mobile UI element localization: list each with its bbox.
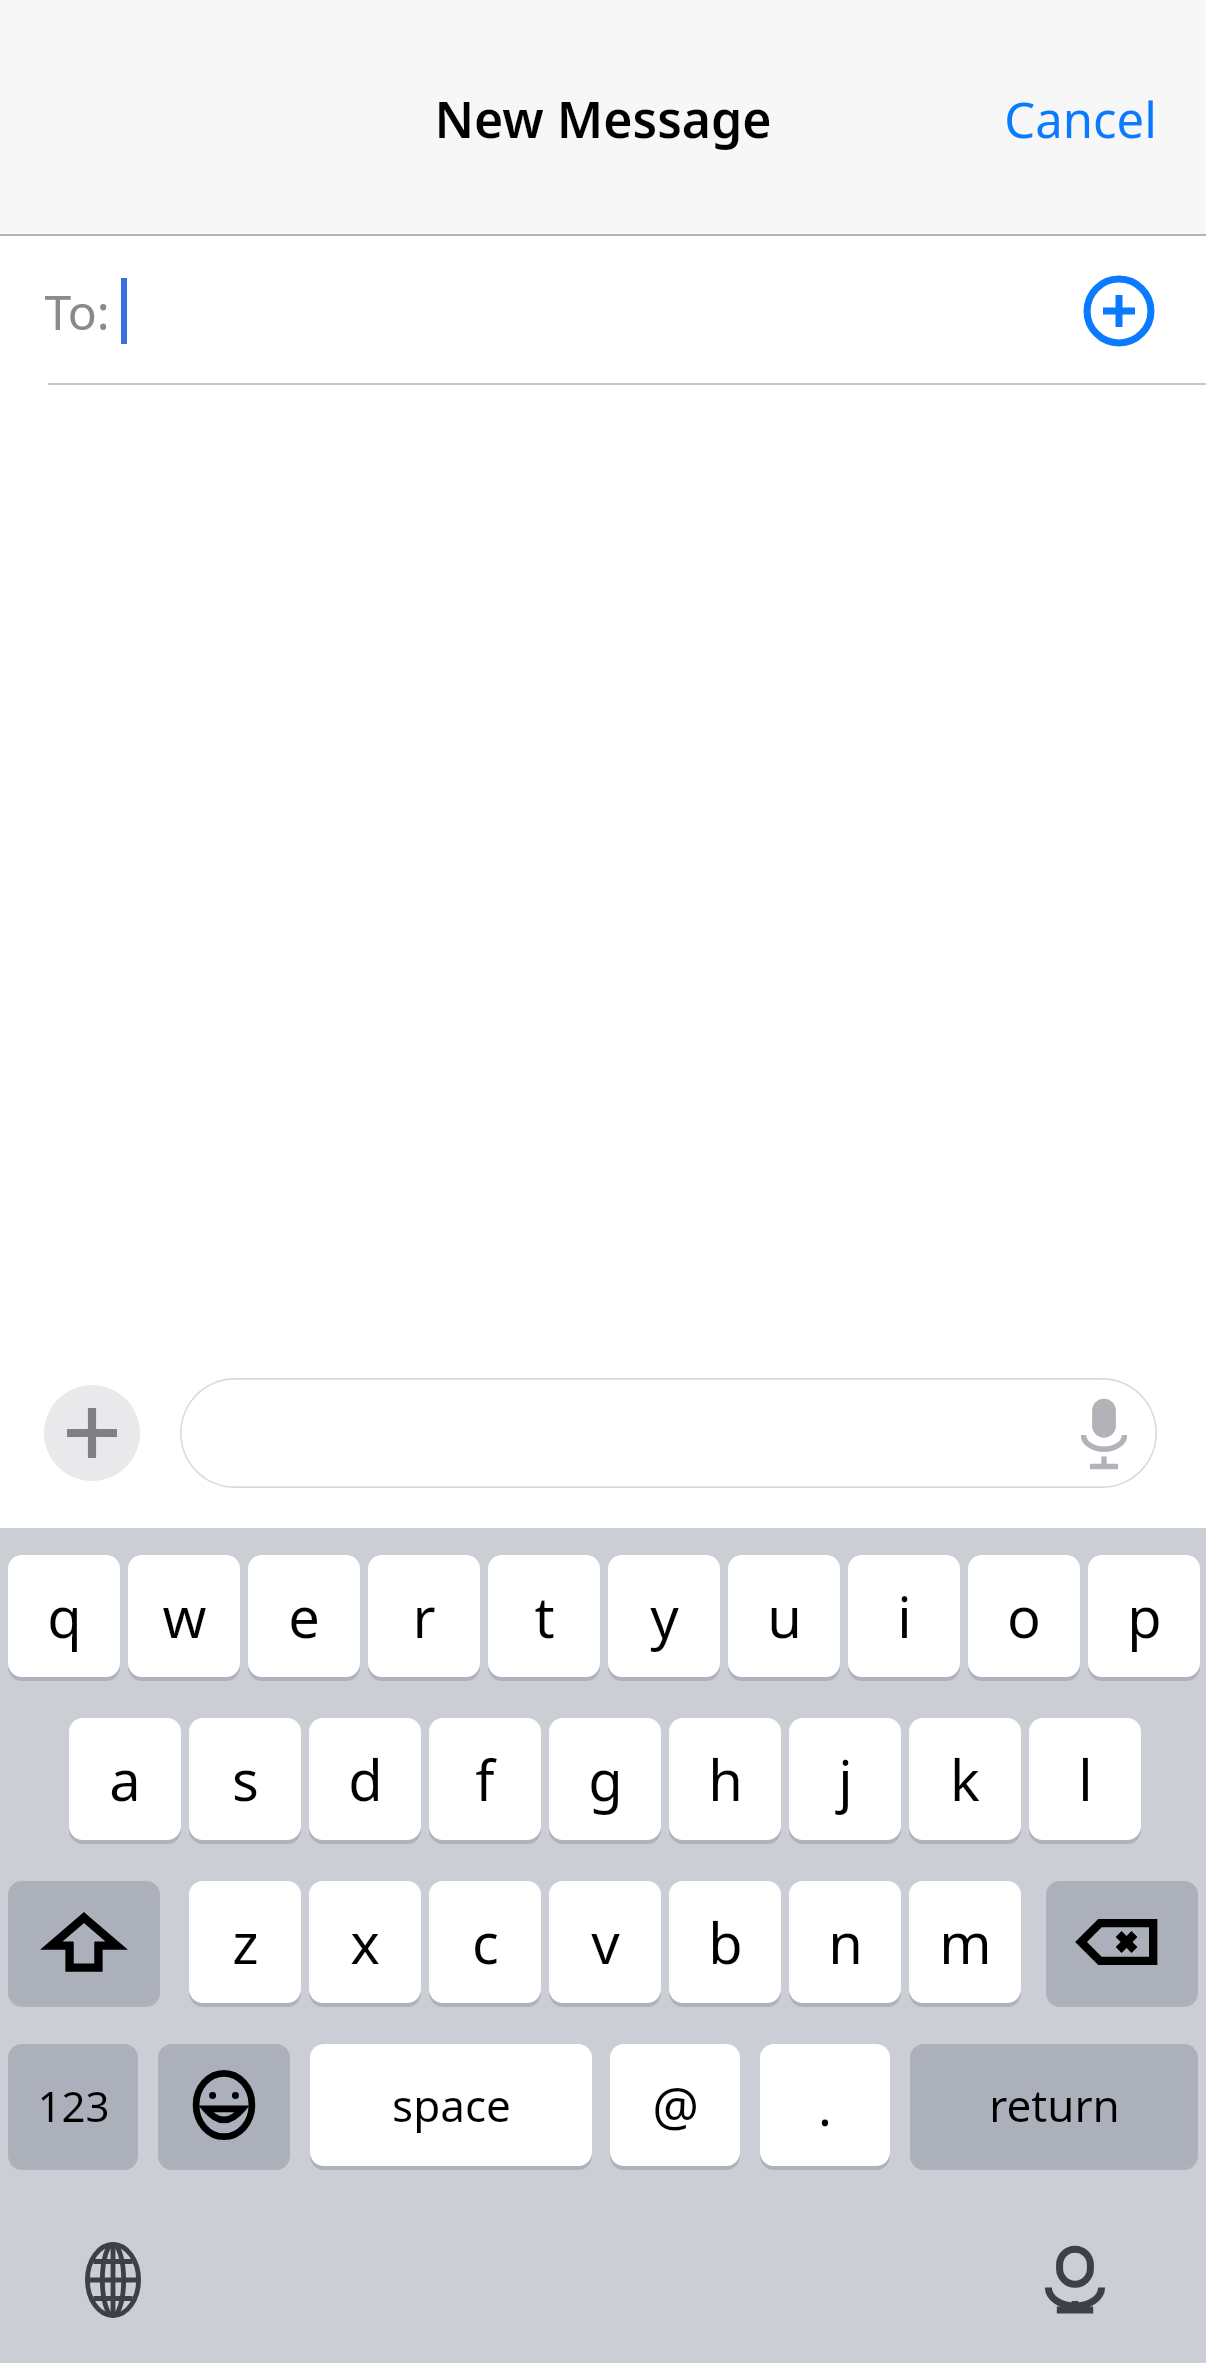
staticText: u	[767, 1578, 802, 1654]
button[interactable]: o	[968, 1555, 1080, 1677]
staticText: q	[47, 1578, 82, 1654]
staticText: x	[350, 1904, 380, 1980]
staticText: space	[392, 2075, 511, 2135]
button[interactable]: Delete	[1046, 1881, 1198, 2003]
button[interactable]: space	[310, 2044, 592, 2166]
button[interactable]: v	[549, 1881, 661, 2003]
staticText: a	[109, 1741, 141, 1817]
button[interactable]: y	[608, 1555, 720, 1677]
button[interactable]: k	[909, 1718, 1021, 1840]
staticText: c	[472, 1904, 499, 1980]
button[interactable]: f	[429, 1718, 541, 1840]
button[interactable]: c	[429, 1881, 541, 2003]
button[interactable]: d	[309, 1718, 421, 1840]
button[interactable]: @	[610, 2044, 740, 2166]
button[interactable]: i	[848, 1555, 960, 1677]
staticText: return	[989, 2075, 1120, 2135]
button[interactable]: Dictation	[1020, 2225, 1130, 2335]
button[interactable]: q	[8, 1555, 120, 1677]
button[interactable]: g	[549, 1718, 661, 1840]
button[interactable]: Cancel	[975, 72, 1185, 166]
button[interactable]: p	[1088, 1555, 1200, 1677]
button[interactable]	[180, 1378, 1157, 1488]
staticText: .	[818, 2070, 832, 2141]
staticText: 123	[37, 2077, 110, 2134]
staticText: To:	[44, 279, 110, 344]
staticText: s	[232, 1741, 259, 1817]
button[interactable]: z	[189, 1881, 301, 2003]
button[interactable]: m	[909, 1881, 1021, 2003]
staticText: n	[828, 1904, 863, 1980]
button[interactable]: Add contact	[1072, 264, 1166, 358]
button[interactable]: x	[309, 1881, 421, 2003]
button[interactable]: b	[669, 1881, 781, 2003]
staticText: g	[588, 1741, 623, 1817]
button[interactable]: return	[910, 2044, 1198, 2166]
staticText: z	[232, 1904, 259, 1980]
button[interactable]: Emoji	[158, 2044, 290, 2166]
button[interactable]: r	[368, 1555, 480, 1677]
staticText: h	[708, 1741, 743, 1817]
staticText: j	[838, 1741, 853, 1817]
staticText: e	[288, 1578, 320, 1654]
button[interactable]	[0, 236, 1206, 384]
staticText: k	[950, 1741, 980, 1817]
staticText: v	[591, 1904, 620, 1980]
button[interactable]: t	[488, 1555, 600, 1677]
button[interactable]: Change keyboard	[58, 2225, 168, 2335]
button[interactable]: Add attachment	[44, 1385, 140, 1481]
staticText: i	[897, 1578, 912, 1654]
button[interactable]: a	[69, 1718, 181, 1840]
button[interactable]: Shift	[8, 1881, 160, 2003]
button[interactable]: n	[789, 1881, 901, 2003]
button[interactable]: h	[669, 1718, 781, 1840]
staticText: Cancel	[1004, 86, 1157, 153]
staticText: d	[348, 1741, 383, 1817]
button[interactable]: l	[1029, 1718, 1141, 1840]
button[interactable]: j	[789, 1718, 901, 1840]
staticText: o	[1007, 1578, 1041, 1654]
staticText: m	[939, 1904, 992, 1980]
staticText: p	[1127, 1578, 1162, 1654]
button[interactable]: u	[728, 1555, 840, 1677]
button[interactable]: e	[248, 1555, 360, 1677]
staticText: @	[652, 2070, 699, 2141]
staticText: f	[475, 1741, 495, 1817]
button[interactable]: Numbers	[8, 2044, 138, 2166]
staticText: New Message	[434, 85, 772, 153]
staticText: b	[708, 1904, 743, 1980]
staticText: w	[162, 1578, 207, 1654]
button[interactable]: s	[189, 1718, 301, 1840]
staticText: y	[650, 1578, 679, 1654]
button[interactable]: .	[760, 2044, 890, 2166]
staticText: r	[412, 1578, 436, 1654]
button[interactable]: w	[128, 1555, 240, 1677]
staticText: t	[534, 1578, 555, 1654]
staticText: l	[1078, 1741, 1093, 1817]
